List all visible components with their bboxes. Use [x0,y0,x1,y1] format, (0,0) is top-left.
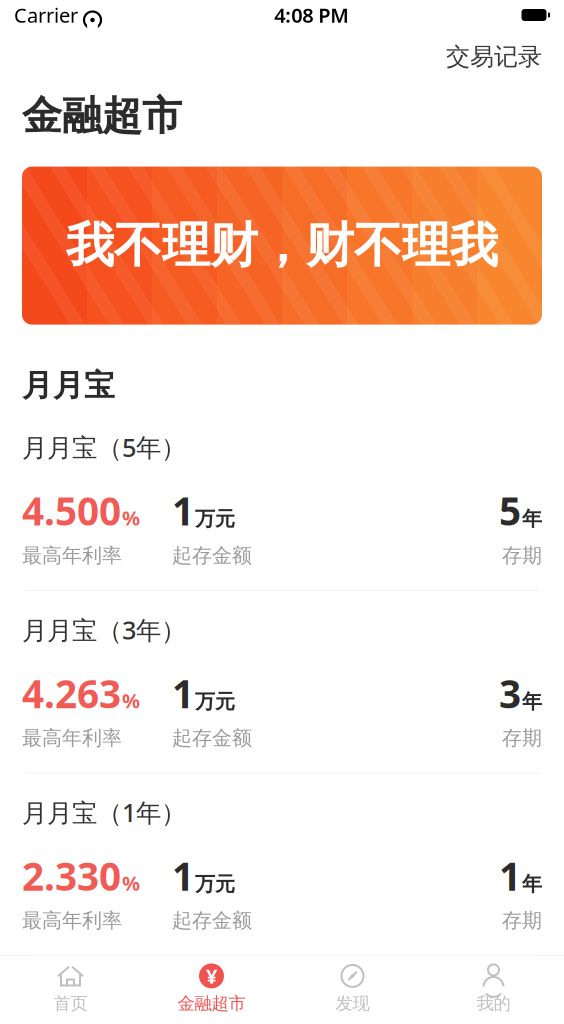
staticText: 年 [522,507,542,531]
staticText: 最高年利率 [22,543,122,568]
staticText: 起存金额 [172,726,252,750]
staticText: 4.500 [22,485,121,536]
staticText: 4.263 [22,667,121,719]
staticText: 1 [499,850,521,901]
staticText: 万元 [195,689,235,714]
staticText: 1 [172,667,194,719]
staticText: 金融超市 [22,91,182,141]
staticText: 金融超市 [177,993,245,1014]
staticText: 起存金额 [172,543,252,568]
button[interactable]: 我的 [423,956,564,1023]
staticText: 月月宝（1年） [22,795,186,829]
staticText: 2.330 [22,850,121,901]
button[interactable]: 月月宝（3年） [0,591,564,772]
staticText: 月月宝 [22,367,115,404]
button[interactable]: 我不理财，财不理我 [22,167,542,325]
staticText: 1 [172,485,194,536]
staticText: 存期 [502,908,542,933]
staticText: 年 [522,872,542,896]
staticText: 最高年利率 [22,908,122,933]
staticText: % [122,870,140,896]
staticText: 5 [499,485,521,536]
staticText: 存期 [502,726,542,750]
staticText: 月月宝（5年） [22,430,186,464]
staticText: 3 [499,667,521,719]
staticText: 起存金额 [172,908,252,933]
staticText: 万元 [195,872,235,896]
staticText: 年 [522,689,542,714]
staticText: % [122,505,140,531]
button[interactable]: 月月宝（1年） [0,773,564,955]
staticText: 最高年利率 [22,726,122,750]
staticText: % [122,687,140,714]
staticText: 交易记录 [446,42,542,71]
button[interactable]: 首页 [0,956,141,1023]
staticText: 首页 [53,993,87,1014]
staticText: 发现 [335,993,369,1014]
button[interactable]: 交易记录 [442,36,546,77]
staticText: 月月宝（3年） [22,613,186,646]
staticText: ¥ [206,963,217,989]
button[interactable]: 发现 [282,956,423,1023]
button[interactable]: 月月宝（5年） [0,408,564,590]
staticText: 1 [172,850,194,901]
staticText: 我的 [476,993,510,1014]
button[interactable]: ¥ [141,956,282,1023]
staticText: 我不理财，财不理我 [66,216,498,275]
staticText: 万元 [195,507,235,531]
staticText: 存期 [502,543,542,568]
